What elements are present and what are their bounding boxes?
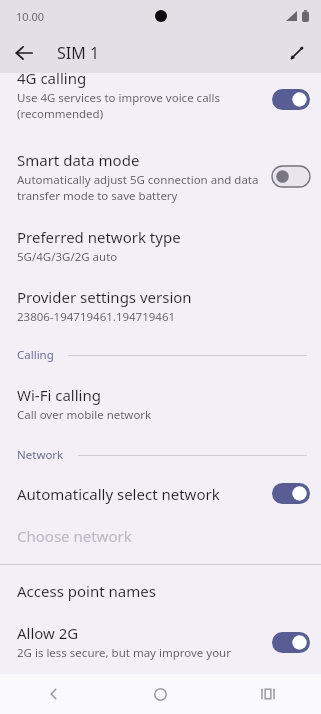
staticText: 2G is less secure, but may improve your … xyxy=(17,645,262,662)
staticText: Smart data mode xyxy=(17,150,140,170)
other: On xyxy=(272,483,310,504)
staticText: Provider settings version xyxy=(17,287,192,307)
staticText: Wi-Fi calling xyxy=(17,385,101,405)
other: On xyxy=(272,89,310,110)
button[interactable]: Back xyxy=(6,35,42,71)
other: Off xyxy=(272,166,310,187)
staticText: Calling xyxy=(17,347,54,363)
button[interactable]: Access point names xyxy=(0,565,321,617)
staticText: Call over mobile network xyxy=(17,407,152,423)
staticText: 5G/4G/3G/2G auto xyxy=(17,249,118,265)
staticText: Allow 2G xyxy=(17,623,79,643)
button[interactable]: Automatically select network xyxy=(0,469,321,516)
staticText: Automatically adjust 5G connection and d… xyxy=(17,172,259,203)
staticText: Network xyxy=(17,447,64,463)
staticText: 10.00 xyxy=(16,9,45,24)
button[interactable]: 4G calling xyxy=(0,73,321,142)
staticText: Choose network xyxy=(17,526,132,546)
staticText: SIM 1 xyxy=(57,42,100,64)
button[interactable]: Wi-Fi calling xyxy=(0,369,321,439)
button[interactable]: Preferred network type xyxy=(0,221,321,283)
button[interactable]: Home xyxy=(107,674,214,714)
button[interactable]: Provider settings version xyxy=(0,283,321,339)
staticText: Preferred network type xyxy=(17,227,181,247)
button[interactable]: Edit xyxy=(279,35,315,71)
other: On xyxy=(272,632,310,653)
button[interactable]: Smart data mode xyxy=(0,142,321,221)
staticText: Automatically select network xyxy=(17,484,220,504)
staticText: 4G calling xyxy=(17,68,87,88)
button[interactable]: Allow 2G xyxy=(0,617,321,674)
staticText: Use 4G services to improve voice calls (… xyxy=(17,90,221,121)
staticText: 23806-194719461.194719461 xyxy=(17,309,176,325)
button[interactable]: Recents xyxy=(214,674,321,714)
button[interactable]: Choose network xyxy=(0,516,321,564)
button[interactable]: Back xyxy=(0,674,107,714)
staticText: Access point names xyxy=(17,581,156,601)
